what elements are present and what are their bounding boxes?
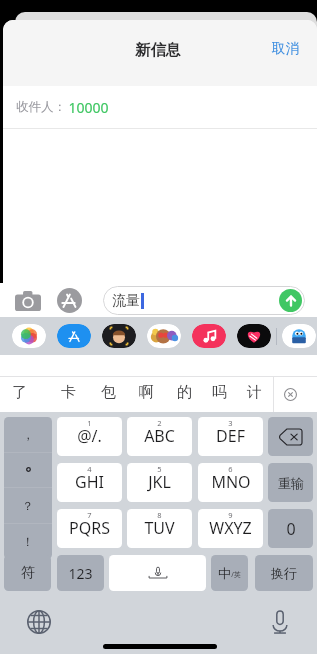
staticText: GHI: [75, 471, 104, 493]
button[interactable]: ！: [4, 523, 52, 559]
button[interactable]: Close candidates: [273, 377, 317, 412]
staticText: TUV: [144, 517, 175, 539]
staticText: ABC: [144, 425, 175, 447]
staticText: 8: [157, 510, 162, 520]
button[interactable]: 取消: [257, 34, 317, 63]
staticText: 啊: [139, 383, 154, 402]
staticText: 了: [12, 383, 27, 402]
button[interactable]: QQ: [282, 324, 316, 348]
staticText: DEF: [216, 425, 245, 447]
staticText: 换行: [271, 565, 297, 581]
button[interactable]: ，: [4, 417, 52, 452]
staticText: ，: [22, 427, 34, 442]
button[interactable]: 6: [198, 463, 263, 502]
staticText: ？: [22, 498, 34, 513]
button[interactable]: 1: [57, 417, 122, 456]
staticText: 卡: [61, 383, 76, 402]
staticText: 的: [177, 383, 192, 402]
button[interactable]: 3: [198, 417, 263, 456]
staticText: 7: [87, 510, 92, 520]
button[interactable]: Memoji: [102, 324, 136, 348]
button[interactable]: 中: [211, 555, 248, 591]
button[interactable]: 2: [127, 417, 192, 456]
button[interactable]: 4: [57, 463, 122, 502]
staticText: 0: [286, 518, 296, 540]
button[interactable]: 包: [91, 375, 125, 410]
button[interactable]: 了: [2, 375, 36, 410]
button[interactable]: 5: [127, 463, 192, 502]
staticText: @/.: [77, 425, 102, 447]
button[interactable]: 收件人：: [3, 86, 317, 128]
staticText: 新信息: [135, 40, 181, 59]
button[interactable]: [4, 452, 52, 487]
staticText: 重输: [278, 475, 304, 491]
button[interactable]: Dictation: [267, 609, 293, 635]
button[interactable]: 啊: [129, 375, 163, 410]
button[interactable]: Fitness: [237, 324, 271, 348]
staticText: ！: [22, 534, 34, 549]
staticText: 4: [87, 464, 92, 474]
button[interactable]: Send: [279, 289, 302, 312]
staticText: 包: [101, 383, 116, 402]
button[interactable]: App Store: [57, 324, 91, 348]
staticText: 计: [247, 383, 262, 402]
staticText: 收件人：: [16, 99, 66, 115]
staticText: 123: [68, 564, 93, 583]
staticText: PQRS: [69, 517, 110, 539]
staticText: MNO: [211, 471, 251, 493]
staticText: 10000: [68, 98, 109, 117]
staticText: 6: [228, 464, 233, 474]
button[interactable]: 流量: [103, 286, 305, 315]
staticText: 流量: [112, 292, 140, 310]
button[interactable]: Space: [109, 555, 206, 591]
button[interactable]: 8: [127, 509, 192, 548]
staticText: 3: [228, 418, 233, 428]
button[interactable]: Music: [192, 324, 226, 348]
button[interactable]: Camera: [12, 285, 43, 316]
button[interactable]: 9: [198, 509, 263, 548]
staticText: 9: [228, 510, 233, 520]
button[interactable]: 0: [268, 509, 313, 548]
button[interactable]: 的: [167, 375, 201, 410]
button[interactable]: App Store: [54, 285, 85, 316]
staticText: 吗: [212, 383, 227, 402]
button[interactable]: Switch keyboard: [26, 609, 52, 635]
button[interactable]: Delete: [268, 417, 313, 456]
staticText: JKL: [148, 471, 171, 493]
button[interactable]: 7: [57, 509, 122, 548]
staticText: 5: [157, 464, 162, 474]
staticText: 符: [21, 564, 35, 582]
staticText: 取消: [272, 40, 299, 57]
button[interactable]: 符: [4, 555, 51, 591]
button[interactable]: Stickers: [147, 324, 181, 348]
staticText: WXYZ: [209, 517, 252, 539]
button[interactable]: 计: [237, 375, 271, 410]
button[interactable]: 换行: [255, 555, 313, 591]
button[interactable]: ？: [4, 487, 52, 523]
staticText: 1: [87, 418, 92, 428]
button[interactable]: 123: [57, 555, 104, 591]
staticText: 2: [157, 418, 162, 428]
button[interactable]: 卡: [51, 375, 85, 410]
staticText: /英: [231, 570, 241, 580]
staticText: 中: [218, 565, 231, 581]
button[interactable]: Photos: [12, 324, 46, 348]
button[interactable]: 吗: [202, 375, 236, 410]
button[interactable]: 重输: [268, 463, 313, 502]
